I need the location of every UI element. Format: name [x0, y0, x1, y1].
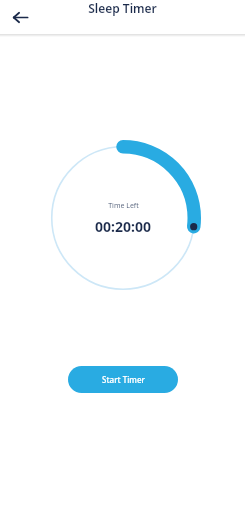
staticText: Sleep Timer: [88, 0, 157, 16]
button[interactable]: Back: [4, 1, 36, 33]
staticText: 00:20:00: [95, 217, 151, 236]
button[interactable]: Start Timer: [68, 366, 178, 393]
staticText: Start Timer: [102, 374, 145, 385]
staticText: Time Left: [108, 201, 139, 211]
